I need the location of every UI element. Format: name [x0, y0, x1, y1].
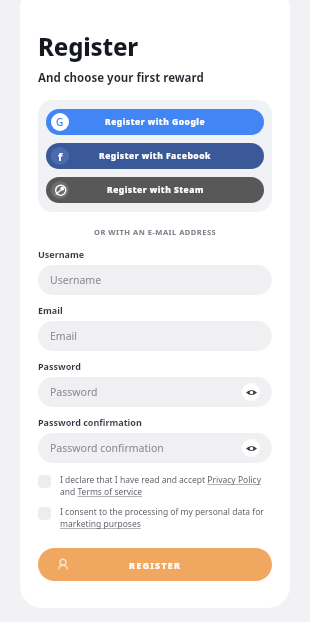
staticText: Register with Google	[105, 116, 206, 128]
staticText: REGISTER	[129, 559, 182, 571]
button[interactable]: Show password	[242, 383, 260, 401]
staticText: Password confirmation	[50, 441, 164, 455]
button[interactable]: REGISTER	[38, 548, 272, 581]
staticText: Password	[50, 385, 98, 399]
staticText: And choose your first reward	[38, 70, 204, 86]
staticText: Register	[38, 30, 139, 63]
staticText: OR WITH AN E-MAIL ADDRESS	[94, 227, 217, 237]
staticText: Register with Steam	[107, 184, 204, 196]
staticText: Username	[50, 273, 102, 287]
staticText: Email	[38, 304, 63, 316]
button[interactable]: Password	[38, 377, 272, 407]
button[interactable]: I declare that I have read and accept Pr…	[38, 474, 272, 498]
staticText: G	[56, 115, 64, 129]
button[interactable]: Username	[38, 265, 272, 295]
staticText: Password	[38, 360, 81, 372]
button[interactable]: Register with Steam	[46, 177, 264, 203]
staticText: Register with Facebook	[99, 150, 211, 162]
button[interactable]: Show password	[242, 439, 260, 457]
button[interactable]: Password confirmation	[38, 433, 272, 463]
staticText: I declare that I have read and accept Pr…	[60, 474, 272, 498]
staticText: Email	[50, 329, 77, 343]
button[interactable]: I consent to the processing of my person…	[38, 506, 272, 530]
staticText: f	[58, 149, 63, 164]
button[interactable]: Register with Facebook	[46, 143, 264, 169]
button[interactable]: Register with Google	[46, 109, 264, 135]
staticText: I consent to the processing of my person…	[60, 506, 272, 530]
staticText: Password confirmation	[38, 416, 142, 428]
staticText: Username	[38, 248, 85, 260]
button[interactable]: Email	[38, 321, 272, 351]
